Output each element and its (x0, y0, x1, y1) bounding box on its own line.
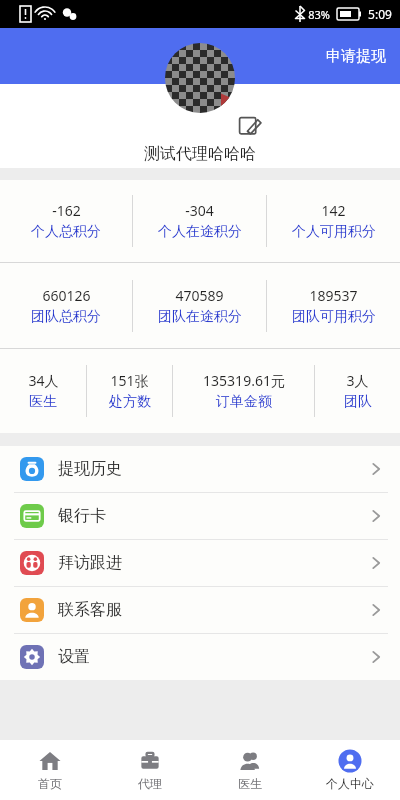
staticText: 设置 (58, 647, 90, 667)
button[interactable]: 142 (267, 180, 400, 262)
staticText: 135319.61元 (203, 371, 285, 390)
button[interactable]: -162 (0, 180, 132, 262)
staticText: 医生 (29, 393, 57, 411)
staticText: 订单金额 (216, 393, 272, 411)
staticText: 团队总积分 (31, 308, 101, 326)
button[interactable]: -304 (133, 180, 266, 262)
staticText: 代理 (138, 776, 162, 791)
button[interactable]: 提现历史 (0, 446, 400, 492)
button[interactable]: Avatar (165, 43, 235, 113)
staticText: 团队 (344, 393, 372, 411)
staticText: 团队可用积分 (292, 308, 376, 326)
staticText: 660126 (42, 286, 91, 305)
button[interactable]: 拜访跟进 (0, 540, 400, 586)
button[interactable]: 首页 (0, 740, 100, 800)
staticText: 处方数 (109, 393, 151, 411)
button[interactable]: 代理 (100, 740, 200, 800)
button[interactable]: 个人中心 (300, 740, 400, 800)
staticText: 83% (308, 7, 330, 22)
staticText: -304 (185, 201, 214, 220)
button[interactable]: 660126 (0, 263, 132, 348)
staticText: 银行卡 (58, 506, 106, 526)
button[interactable]: 设置 (0, 634, 400, 680)
button[interactable]: 银行卡 (0, 493, 400, 539)
staticText: 测试代理哈哈哈 (144, 144, 256, 164)
staticText: 189537 (309, 286, 358, 305)
staticText: 医生 (238, 776, 262, 791)
staticText: 申请提现 (326, 47, 386, 66)
button[interactable]: 189537 (267, 263, 400, 348)
staticText: 3人 (346, 371, 369, 390)
button[interactable]: Edit profile (237, 113, 263, 139)
staticText: 团队在途积分 (158, 308, 242, 326)
staticText: 34人 (28, 371, 59, 390)
staticText: 个人中心 (326, 776, 374, 791)
staticText: 提现历史 (58, 459, 122, 479)
button[interactable]: 申请提现 (312, 39, 400, 74)
staticText: 个人在途积分 (158, 223, 242, 241)
button[interactable]: 3人 (315, 349, 400, 433)
staticText: 首页 (38, 776, 62, 791)
button[interactable]: 135319.61元 (173, 349, 314, 433)
staticText: 个人总积分 (31, 223, 101, 241)
staticText: 拜访跟进 (58, 553, 122, 573)
staticText: 470589 (175, 286, 224, 305)
button[interactable]: 联系客服 (0, 587, 400, 633)
staticText: 个人可用积分 (292, 223, 376, 241)
button[interactable]: 医生 (200, 740, 300, 800)
button[interactable]: 34人 (0, 349, 86, 433)
button[interactable]: 151张 (87, 349, 172, 433)
staticText: 联系客服 (58, 600, 122, 620)
staticText: 5:09 (368, 6, 392, 22)
staticText: 151张 (110, 371, 149, 390)
button[interactable]: 470589 (133, 263, 266, 348)
staticText: 142 (321, 201, 346, 220)
staticText: -162 (52, 201, 81, 220)
